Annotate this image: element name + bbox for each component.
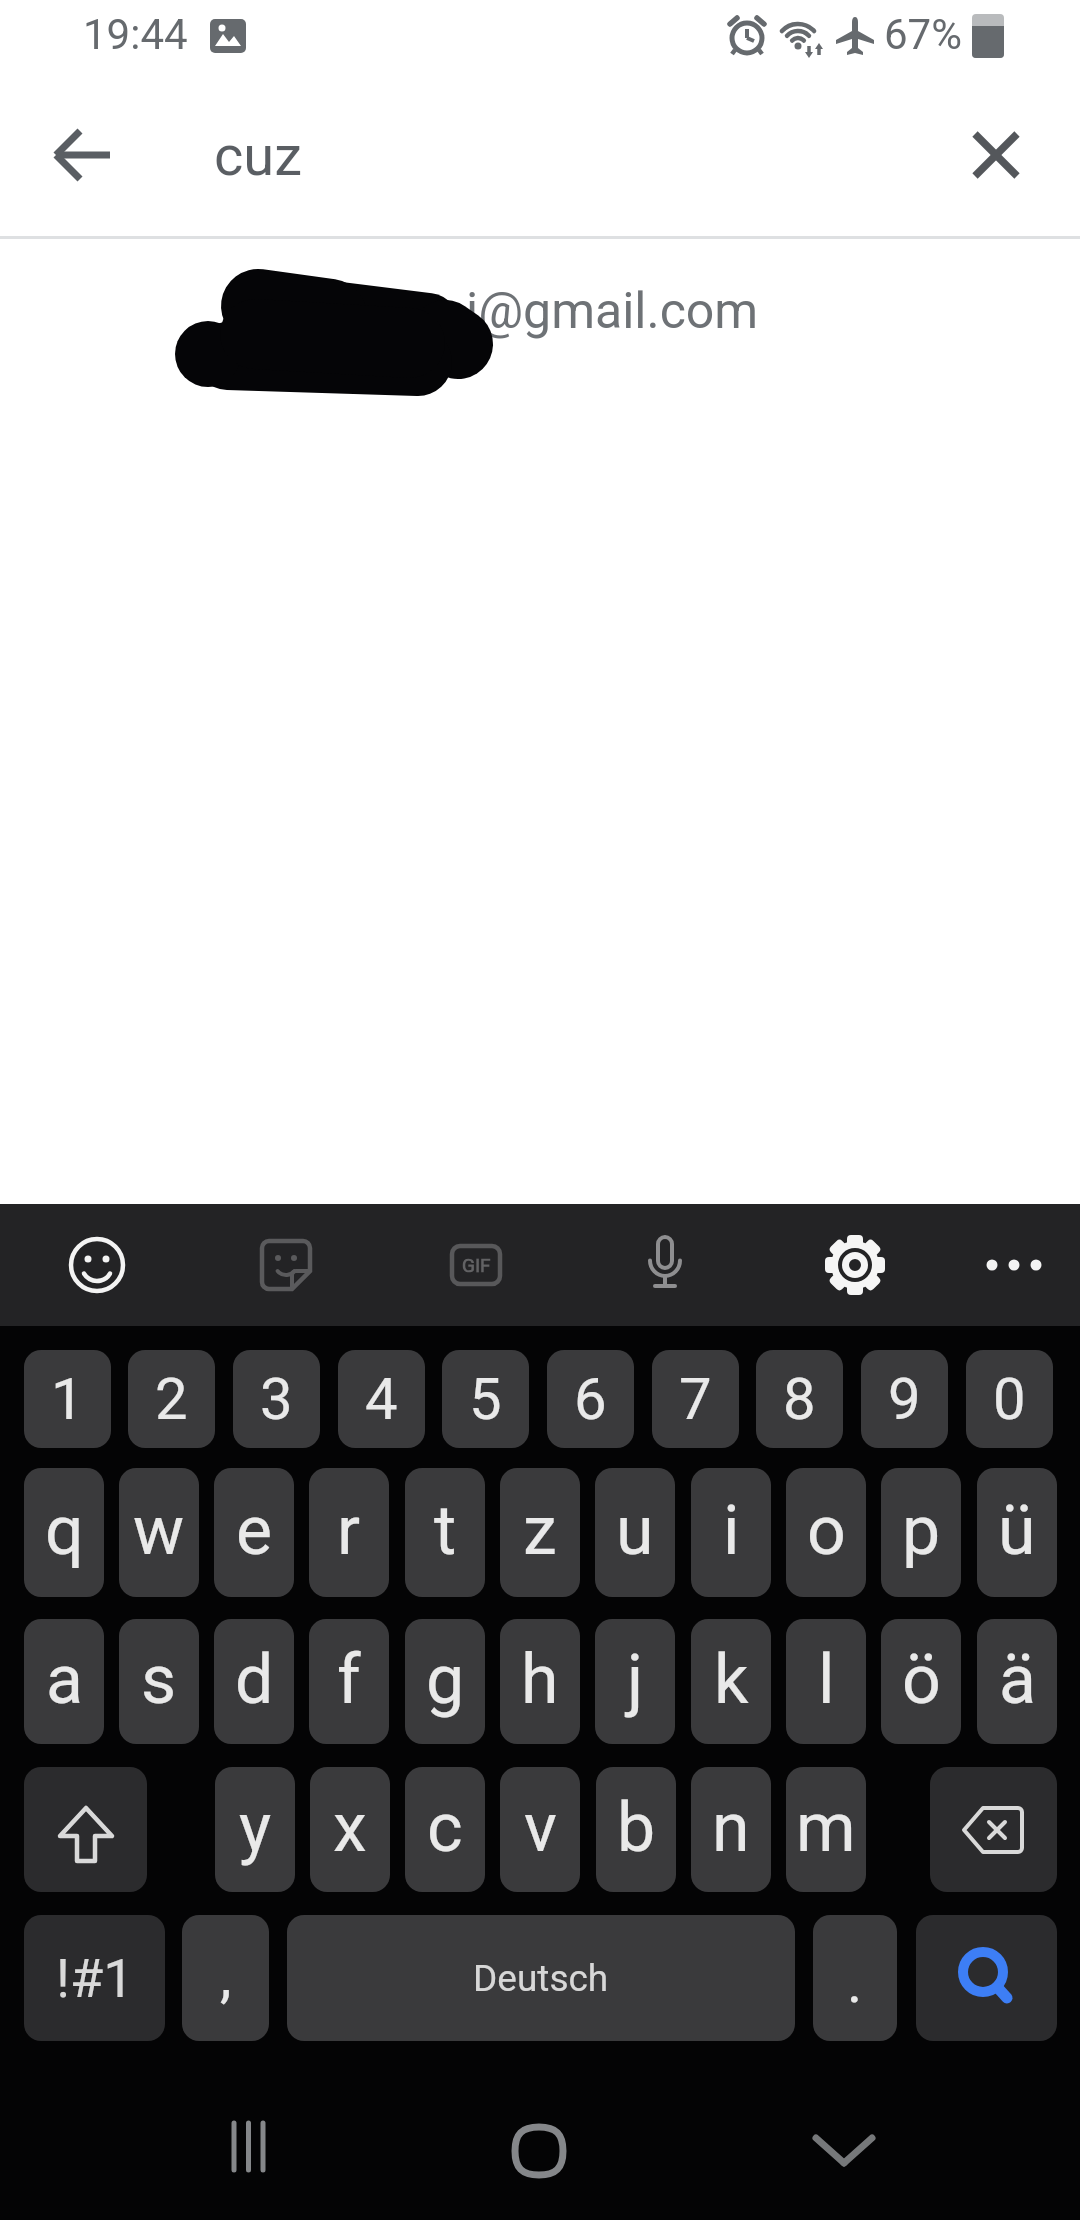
staticText: f [337, 1640, 361, 1720]
button[interactable] [253, 1232, 319, 1298]
staticText: k [714, 1640, 749, 1720]
staticText: ä [999, 1640, 1036, 1720]
button[interactable]: r [309, 1468, 389, 1597]
staticText: c [427, 1788, 463, 1868]
staticText: v [524, 1788, 557, 1868]
button[interactable]: f [309, 1619, 389, 1744]
staticText: 9 [888, 1365, 921, 1433]
button[interactable] [46, 118, 120, 192]
staticText: . [847, 1948, 863, 2016]
button[interactable]: ä [977, 1619, 1057, 1744]
button[interactable]: t [405, 1468, 485, 1597]
button[interactable]: GIF [443, 1232, 509, 1298]
button[interactable] [64, 1232, 130, 1298]
staticText: 6 [574, 1365, 607, 1433]
staticText: 7 [679, 1365, 712, 1433]
staticText: 1 [51, 1365, 84, 1433]
staticText: 67% [884, 10, 962, 59]
staticText: j [627, 1640, 644, 1720]
staticText: i@gmail.com [466, 282, 759, 341]
button[interactable] [24, 1767, 147, 1892]
staticText: Deutsch [473, 1957, 609, 2000]
staticText: 4 [365, 1365, 398, 1433]
button[interactable]: w [119, 1468, 199, 1597]
button[interactable]: y [215, 1767, 295, 1892]
button[interactable]: c [405, 1767, 485, 1892]
button[interactable]: 0 [966, 1350, 1053, 1448]
staticText: o [807, 1491, 846, 1571]
button[interactable]: h [500, 1619, 580, 1744]
button[interactable]: Deutsch [287, 1915, 795, 2041]
button[interactable]: 6 [547, 1350, 634, 1448]
button[interactable]: l [786, 1619, 866, 1744]
staticText: l [818, 1640, 835, 1720]
staticText: 0 [993, 1365, 1026, 1433]
staticText: !#1 [56, 1947, 134, 2010]
button[interactable]: 7 [652, 1350, 739, 1448]
staticText: p [902, 1491, 941, 1571]
staticText: 8 [783, 1365, 816, 1433]
staticText: m [796, 1788, 856, 1868]
staticText: , [220, 1942, 232, 2010]
button[interactable]: 5 [442, 1350, 529, 1448]
button[interactable]: i@gmail.com [0, 240, 1080, 440]
staticText: x [333, 1788, 367, 1868]
staticText: r [337, 1491, 361, 1571]
staticText: g [426, 1640, 465, 1720]
staticText: a [46, 1640, 83, 1720]
button[interactable] [807, 2114, 881, 2188]
button[interactable]: o [786, 1468, 866, 1597]
button[interactable]: ö [881, 1619, 961, 1744]
button[interactable]: !#1 [24, 1915, 165, 2041]
button[interactable] [211, 2110, 285, 2184]
button[interactable] [981, 1232, 1047, 1298]
button[interactable]: 9 [861, 1350, 948, 1448]
button[interactable]: z [500, 1468, 580, 1597]
button[interactable]: 4 [338, 1350, 425, 1448]
button[interactable]: 8 [756, 1350, 843, 1448]
button[interactable]: 2 [128, 1350, 215, 1448]
button[interactable]: x [310, 1767, 390, 1892]
button[interactable]: 3 [233, 1350, 320, 1448]
button[interactable]: v [500, 1767, 580, 1892]
staticText: b [617, 1788, 656, 1868]
button[interactable]: ü [977, 1468, 1057, 1597]
button[interactable]: j [595, 1619, 675, 1744]
staticText: 19:44 [83, 10, 188, 59]
button[interactable]: g [405, 1619, 485, 1744]
staticText: cuz [214, 123, 302, 189]
button[interactable] [502, 2114, 576, 2188]
staticText: ü [998, 1491, 1036, 1571]
button[interactable]: , [182, 1915, 269, 2041]
staticText: s [141, 1640, 177, 1720]
button[interactable]: a [24, 1619, 104, 1744]
button[interactable]: q [24, 1468, 104, 1597]
button[interactable] [930, 1767, 1057, 1892]
button[interactable] [822, 1232, 888, 1298]
staticText: e [236, 1491, 273, 1571]
staticText: t [434, 1491, 457, 1571]
button[interactable] [959, 118, 1033, 192]
button[interactable]: s [119, 1619, 199, 1744]
button[interactable]: 1 [24, 1350, 111, 1448]
staticText: 5 [469, 1365, 502, 1433]
staticText: y [239, 1788, 272, 1868]
button[interactable]: p [881, 1468, 961, 1597]
staticText: n [712, 1788, 750, 1868]
staticText: 3 [260, 1365, 293, 1433]
button[interactable]: m [786, 1767, 866, 1892]
button[interactable] [916, 1915, 1057, 2041]
button[interactable]: u [595, 1468, 675, 1597]
staticText: 2 [155, 1365, 188, 1433]
button[interactable]: i [691, 1468, 771, 1597]
staticText: d [235, 1640, 274, 1720]
button[interactable]: k [691, 1619, 771, 1744]
button[interactable]: n [691, 1767, 771, 1892]
button[interactable]: . [813, 1915, 897, 2041]
button[interactable]: e [214, 1468, 294, 1597]
staticText: GIF [462, 1254, 491, 1276]
button[interactable]: b [596, 1767, 676, 1892]
staticText: z [523, 1491, 557, 1571]
button[interactable]: d [214, 1619, 294, 1744]
button[interactable] [632, 1232, 698, 1298]
